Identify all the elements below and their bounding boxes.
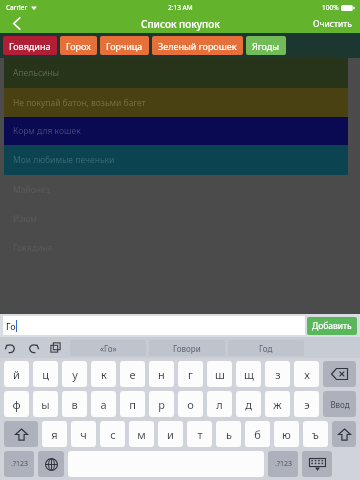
staticText: Мои любимые печеньки: [13, 154, 115, 166]
staticText: э: [304, 397, 310, 412]
staticText: .?123: [11, 459, 28, 469]
button[interactable]: ц: [33, 361, 58, 387]
staticText: Не покупай батон, возьми багет: [13, 97, 146, 109]
staticText: ь: [226, 427, 232, 442]
button[interactable]: Говядина: [3, 36, 57, 55]
button[interactable]: з: [265, 361, 290, 387]
button[interactable]: т: [187, 421, 212, 447]
button[interactable]: .?123: [268, 451, 298, 477]
button[interactable]: д: [236, 391, 261, 417]
button[interactable]: й: [4, 361, 29, 387]
staticText: в: [71, 397, 78, 412]
button[interactable]: Back: [0, 14, 34, 33]
button[interactable]: Апельсины: [4, 58, 348, 88]
button[interactable]: м: [129, 421, 154, 447]
staticText: б: [254, 427, 261, 442]
button[interactable]: Ягоды: [246, 36, 286, 55]
button[interactable]: с: [100, 421, 125, 447]
staticText: Горчица: [106, 40, 143, 52]
button[interactable]: б: [245, 421, 270, 447]
button[interactable]: к: [91, 361, 116, 387]
staticText: ю: [282, 427, 291, 442]
button[interactable]: я: [42, 421, 67, 447]
staticText: Говори: [173, 343, 201, 354]
button[interactable]: Год: [228, 340, 304, 356]
button[interactable]: Hide keyboard: [302, 451, 332, 477]
button[interactable]: Shift: [332, 421, 356, 447]
button[interactable]: Мои любимые печеньки: [4, 145, 348, 175]
staticText: Говядина: [9, 40, 51, 52]
staticText: Список покупок: [141, 17, 220, 31]
button[interactable]: Горох: [60, 36, 97, 55]
button[interactable]: Очистить: [305, 14, 360, 33]
button[interactable]: щ: [236, 361, 261, 387]
button[interactable]: а: [91, 391, 116, 417]
staticText: е: [129, 367, 136, 382]
button[interactable]: и: [158, 421, 183, 447]
staticText: Говядина: [13, 242, 53, 254]
staticText: и: [167, 427, 174, 442]
button[interactable]: е: [120, 361, 145, 387]
button[interactable]: Говори: [149, 340, 225, 356]
staticText: .?123: [275, 459, 292, 469]
button[interactable]: о: [178, 391, 203, 417]
button[interactable]: Redo: [22, 337, 44, 358]
button[interactable]: ч: [71, 421, 96, 447]
button[interactable]: э: [294, 391, 319, 417]
button[interactable]: Backspace: [323, 361, 356, 387]
button[interactable]: г: [178, 361, 203, 387]
staticText: д: [245, 397, 252, 412]
staticText: Ввод: [330, 399, 350, 410]
staticText: Апельсины: [13, 67, 60, 79]
button[interactable]: Shift: [4, 421, 38, 447]
button[interactable]: .?123: [4, 451, 34, 477]
staticText: Го: [6, 320, 16, 332]
staticText: й: [13, 367, 20, 382]
button[interactable]: в: [62, 391, 87, 417]
staticText: «Го»: [100, 343, 117, 354]
staticText: у: [72, 367, 78, 382]
staticText: Ягоды: [252, 40, 280, 52]
staticText: ш: [215, 367, 225, 382]
staticText: р: [158, 397, 165, 412]
staticText: г: [188, 367, 193, 382]
button[interactable]: р: [149, 391, 174, 417]
button[interactable]: Ввод: [323, 391, 356, 417]
staticText: а: [100, 397, 107, 412]
staticText: Изюм: [13, 213, 37, 225]
staticText: Корм для кошек: [13, 125, 81, 137]
button[interactable]: у: [62, 361, 87, 387]
staticText: ж: [273, 397, 282, 412]
button[interactable]: л: [207, 391, 232, 417]
button[interactable]: Зеленый горошек: [152, 36, 243, 55]
button[interactable]: Undo: [0, 337, 22, 358]
button[interactable]: п: [120, 391, 145, 417]
button[interactable]: Го: [3, 316, 305, 335]
button[interactable]: ъ: [303, 421, 328, 447]
button[interactable]: ж: [265, 391, 290, 417]
staticText: ч: [80, 427, 87, 442]
staticText: Горох: [66, 40, 91, 52]
button[interactable]: х: [294, 361, 319, 387]
button[interactable]: ш: [207, 361, 232, 387]
button[interactable]: Paste: [44, 337, 66, 358]
button[interactable]: ы: [33, 391, 58, 417]
staticText: ц: [42, 367, 49, 382]
button[interactable]: ю: [274, 421, 299, 447]
staticText: 100%: [322, 3, 339, 12]
button[interactable]: Switch keyboard language: [38, 451, 64, 477]
button[interactable]: Добавить: [307, 317, 357, 335]
button[interactable]: Не покупай батон, возьми багет: [4, 88, 348, 117]
button[interactable]: ь: [216, 421, 241, 447]
staticText: н: [158, 367, 165, 382]
button[interactable]: «Го»: [70, 340, 146, 356]
button[interactable]: ф: [4, 391, 29, 417]
button[interactable]: Корм для кошек: [4, 117, 348, 145]
staticText: о: [187, 397, 194, 412]
button[interactable]: н: [149, 361, 174, 387]
button[interactable]: Горчица: [100, 36, 149, 55]
